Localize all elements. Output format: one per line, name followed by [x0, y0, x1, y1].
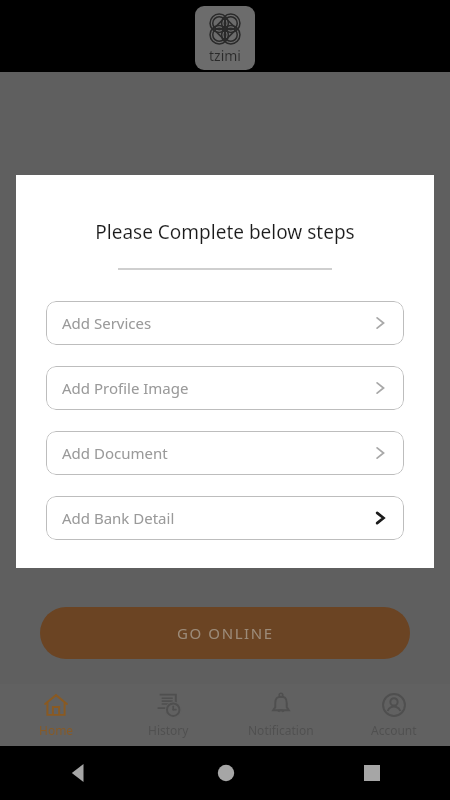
button[interactable]: Add Profile Image [46, 366, 404, 410]
staticText: GO ONLINE [177, 623, 274, 643]
staticText: Notification [248, 722, 314, 738]
button[interactable]: Notification [224, 684, 337, 746]
button[interactable]: History [112, 684, 224, 746]
staticText: Add Profile Image [62, 378, 189, 398]
button[interactable]: Add Bank Detail [46, 496, 404, 540]
button[interactable]: Add Document [46, 431, 404, 475]
staticText: tzimi [209, 46, 241, 65]
button[interactable]: tzimi logo [195, 6, 255, 70]
button[interactable]: Home [0, 684, 112, 746]
button[interactable]: Add Services [46, 301, 404, 345]
button[interactable]: GO ONLINE [40, 607, 410, 659]
staticText: History [148, 722, 189, 738]
button[interactable]: Account [337, 684, 450, 746]
staticText: Home [39, 722, 74, 738]
staticText: Account [371, 722, 417, 738]
staticText: Add Bank Detail [62, 508, 175, 528]
staticText: Please Complete below steps [95, 219, 355, 245]
staticText: Add Services [62, 313, 152, 333]
staticText: Add Document [62, 443, 168, 463]
